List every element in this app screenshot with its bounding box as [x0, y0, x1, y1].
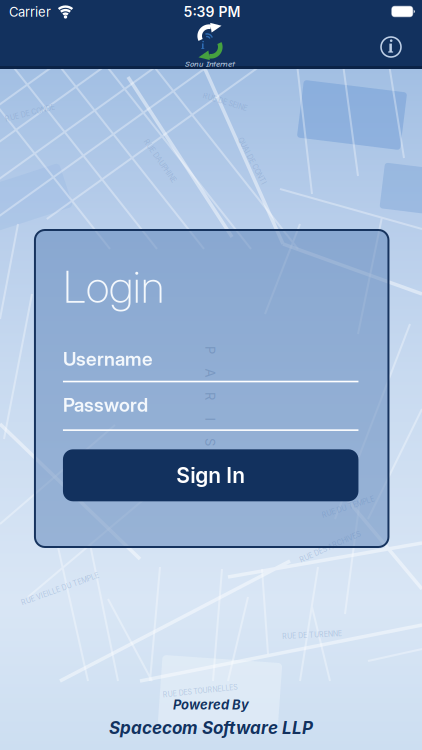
staticText: 5:39 PM	[183, 3, 240, 20]
staticText: Password	[63, 393, 148, 416]
staticText: Login	[63, 260, 164, 313]
staticText: RUE DU TEMPLE	[320, 503, 375, 511]
staticText: QUAI DE CONTI	[226, 157, 278, 165]
staticText: RUE VIEILLE DU TEMPLE	[19, 585, 101, 593]
staticText: P	[206, 342, 214, 358]
staticText: RUE DE CONDE	[4, 109, 55, 117]
staticText: Sonu Internet	[185, 59, 235, 69]
staticText: Sign In	[176, 463, 245, 488]
staticText: Spacecom Software LLP	[109, 718, 313, 738]
staticText: A	[205, 365, 214, 381]
button[interactable]: Info	[378, 34, 404, 60]
staticText: Username	[63, 347, 153, 370]
staticText: R	[206, 388, 214, 404]
staticText: S	[206, 434, 214, 450]
button[interactable]: Username	[63, 347, 358, 382]
staticText: Powered By	[173, 697, 249, 713]
staticText: RUE DE TURENNE	[282, 631, 342, 639]
staticText: RUE DE SEINE	[202, 98, 248, 106]
staticText: RUE DES TOURNELLES	[162, 687, 237, 695]
staticText: RUE DES ARCHIVES	[297, 543, 363, 551]
staticText: RUE DAUPHINE	[134, 157, 185, 165]
staticText: I	[208, 411, 211, 427]
button[interactable]: Sign In	[63, 449, 358, 501]
staticText: Carrier	[9, 4, 51, 20]
button[interactable]: Password	[63, 393, 358, 431]
